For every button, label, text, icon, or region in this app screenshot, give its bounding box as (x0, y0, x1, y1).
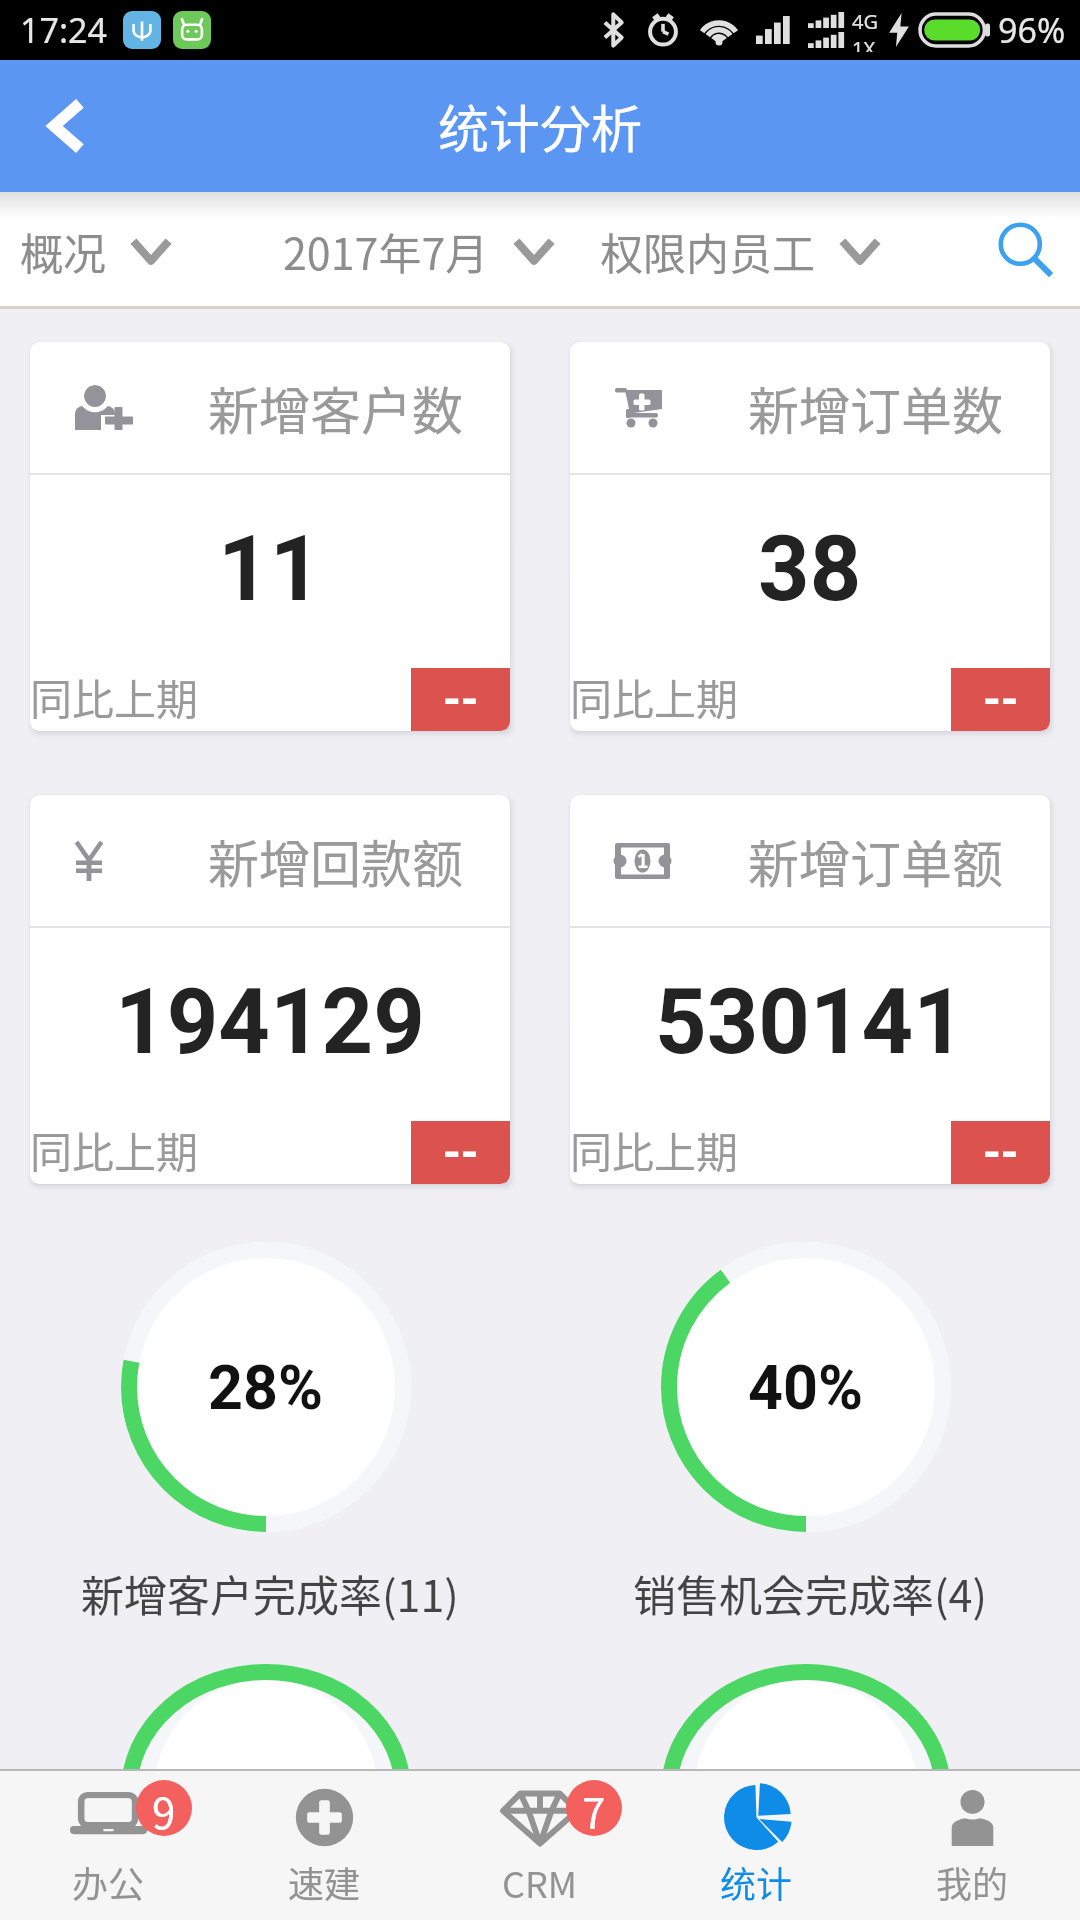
staticText: 2017年7月 (283, 220, 489, 282)
button[interactable]: 新增回款额 (30, 795, 510, 1184)
staticText: 17:24 (20, 7, 107, 53)
staticText: -- (983, 673, 1019, 727)
staticText: 同比上期 (30, 1119, 199, 1180)
staticText: 速建 (288, 1856, 361, 1908)
staticText: 1X (852, 35, 876, 52)
staticText: 194129 (115, 970, 425, 1075)
staticText: 9 (152, 1780, 176, 1836)
staticText: CRM (502, 1856, 578, 1908)
staticText: 4G (852, 8, 878, 35)
button[interactable]: 9 (0, 1771, 216, 1920)
staticText: 新增订单数 (748, 371, 1004, 445)
staticText: 28% (208, 1352, 324, 1423)
staticText: 38 (758, 517, 862, 622)
staticText: 同比上期 (570, 666, 739, 727)
staticText: 新增客户数 (208, 371, 464, 445)
staticText: 统计分析 (438, 89, 643, 163)
staticText: -- (983, 1126, 1019, 1180)
staticText: 销售机会完成率(4) (633, 1562, 987, 1624)
button[interactable]: 新增客户数 (30, 342, 510, 731)
staticText: -- (443, 673, 479, 727)
staticText: 统计 (720, 1856, 793, 1908)
button[interactable]: 7 (432, 1771, 648, 1920)
button[interactable]: 我的 (864, 1771, 1080, 1920)
button[interactable]: 统计 (648, 1771, 864, 1920)
button[interactable]: 2017年7月 (283, 210, 554, 292)
staticText: 7 (582, 1780, 606, 1836)
staticText: 新增客户完成率(11) (81, 1562, 459, 1624)
staticText: 我的 (936, 1856, 1009, 1908)
staticText: 同比上期 (570, 1119, 739, 1180)
staticText: 权限内员工 (600, 220, 815, 282)
button[interactable]: 概况 (20, 210, 171, 292)
staticText: 新增回款额 (208, 824, 464, 898)
staticText: 同比上期 (30, 666, 199, 727)
button[interactable]: Back (0, 60, 132, 192)
button[interactable]: 速建 (216, 1771, 432, 1920)
button[interactable]: 权限内员工 (600, 210, 880, 292)
staticText: -- (443, 1126, 479, 1180)
staticText: 11 (218, 517, 322, 622)
staticText: 新增订单额 (748, 824, 1004, 898)
button[interactable]: Search (974, 192, 1080, 309)
staticText: 96% (998, 7, 1066, 53)
staticText: 530141 (655, 970, 965, 1075)
button[interactable]: 新增订单数 (570, 342, 1050, 731)
staticText: 办公 (72, 1856, 145, 1908)
button[interactable]: 新增订单额 (570, 795, 1050, 1184)
staticText: 概况 (20, 220, 106, 282)
staticText: 40% (748, 1352, 864, 1423)
